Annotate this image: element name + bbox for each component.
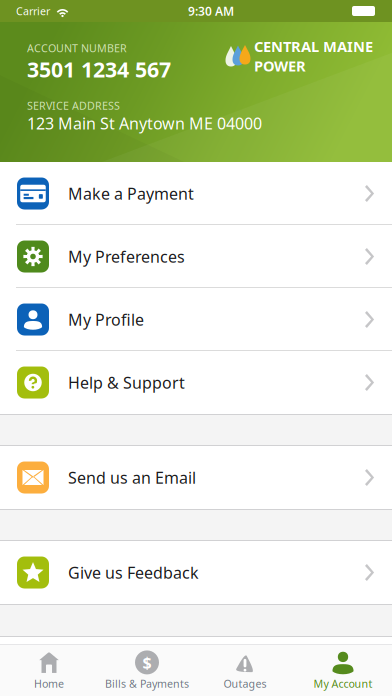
button[interactable]: Outages: [196, 646, 294, 695]
staticText: Carrier: [16, 4, 50, 18]
staticText: 3501 1234 567: [27, 55, 171, 83]
staticText: My Profile: [68, 309, 144, 330]
button[interactable]: Make a Payment: [0, 162, 392, 225]
staticText: My Account: [313, 676, 372, 691]
button[interactable]: Give us Feedback: [0, 541, 392, 604]
staticText: Home: [34, 676, 64, 691]
staticText: $: [142, 652, 151, 673]
button[interactable]: My Preferences: [0, 225, 392, 288]
button[interactable]: Help & Support: [0, 351, 392, 414]
staticText: 123 Main St Anytown ME 04000: [27, 113, 262, 134]
button[interactable]: $: [98, 646, 196, 695]
staticText: My Preferences: [68, 246, 185, 267]
staticText: Send us an Email: [68, 467, 196, 488]
staticText: Give us Feedback: [68, 562, 199, 583]
staticText: SERVICE ADDRESS: [27, 99, 120, 113]
staticText: Bills & Payments: [105, 676, 189, 691]
staticText: Outages: [223, 676, 266, 691]
button[interactable]: My Profile: [0, 288, 392, 351]
button[interactable]: Home: [0, 646, 98, 695]
staticText: CENTRAL MAINE: [254, 36, 373, 56]
staticText: ACCOUNT NUMBER: [27, 41, 127, 55]
button[interactable]: Send us an Email: [0, 446, 392, 509]
staticText: Help & Support: [68, 372, 185, 393]
staticText: POWER: [254, 56, 306, 75]
button[interactable]: My Account: [294, 646, 392, 695]
staticText: 9:30 AM: [188, 3, 234, 19]
staticText: Make a Payment: [68, 183, 194, 204]
